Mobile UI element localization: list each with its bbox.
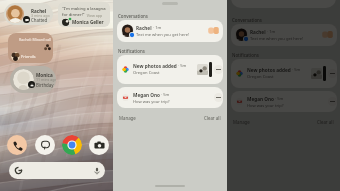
staticText: Monica Geller bbox=[72, 19, 104, 25]
staticText: Text me when you get here! bbox=[250, 36, 304, 42]
staticText: · 5m bbox=[274, 96, 284, 102]
staticText: · 5m bbox=[160, 92, 170, 98]
staticText: New photos added bbox=[247, 67, 291, 73]
button[interactable]: Expand bbox=[214, 65, 223, 74]
button[interactable]: Clear all bbox=[204, 115, 221, 121]
button[interactable]: Chrome bbox=[62, 135, 82, 155]
staticText: Monica bbox=[36, 72, 53, 78]
staticText: "I'm making a lasagna bbox=[62, 6, 106, 12]
staticText: Notifications bbox=[118, 48, 145, 54]
staticText: How was your trip? bbox=[133, 99, 170, 105]
staticText: Chatted bbox=[31, 17, 48, 23]
staticText: Birthday bbox=[36, 82, 54, 88]
button[interactable]: Expand bbox=[328, 97, 337, 106]
staticText: Text me when you get here! bbox=[136, 32, 190, 38]
button[interactable]: Rachel: Missed call bbox=[8, 33, 53, 63]
staticText: · 1m bbox=[266, 29, 276, 35]
button[interactable]: Messages bbox=[35, 135, 55, 155]
button[interactable]: Expand bbox=[214, 93, 223, 102]
staticText: 3 mins ago bbox=[31, 13, 50, 18]
button[interactable]: Rachel bbox=[231, 24, 337, 46]
button[interactable]: "I'm making a lasagna bbox=[58, 2, 110, 27]
staticText: · 5m bbox=[291, 67, 301, 73]
staticText: Oregon Coast bbox=[247, 74, 274, 80]
staticText: · 5m bbox=[177, 63, 187, 69]
staticText: Rachel: Missed call bbox=[19, 37, 52, 42]
staticText: · 1m bbox=[152, 25, 162, 31]
staticText: How was your trip? bbox=[247, 103, 284, 109]
staticText: Notifications bbox=[232, 52, 259, 58]
button[interactable]: Megan Ono bbox=[117, 87, 223, 108]
button[interactable]: Clear all bbox=[317, 119, 334, 125]
staticText: Oregon Coast bbox=[133, 70, 160, 76]
button[interactable]: Monica bbox=[10, 66, 56, 93]
staticText: Conversations bbox=[118, 13, 148, 19]
button[interactable]: New photos added bbox=[231, 59, 337, 88]
button[interactable]: Rachel bbox=[4, 3, 53, 25]
staticText: 11 mins ago bbox=[36, 77, 56, 82]
button[interactable]: Megan Ono bbox=[231, 91, 337, 112]
staticText: Friends bbox=[21, 54, 36, 60]
button[interactable]: Manage bbox=[233, 119, 250, 125]
staticText: Rachel bbox=[31, 8, 47, 14]
staticText: Conversations bbox=[232, 17, 262, 23]
staticText: Rachel bbox=[136, 25, 152, 31]
staticText: Megan Ono bbox=[247, 96, 274, 102]
staticText: Rachel bbox=[250, 29, 266, 35]
staticText: New photos added bbox=[133, 63, 177, 69]
staticText: View app bbox=[85, 13, 103, 18]
button[interactable]: Reply bbox=[322, 30, 333, 39]
button[interactable]: Manage bbox=[119, 115, 136, 121]
button[interactable]: Reply bbox=[208, 26, 219, 35]
staticText: for dinner!" bbox=[62, 12, 85, 18]
button[interactable] bbox=[9, 162, 105, 179]
button[interactable]: New photos added bbox=[117, 55, 223, 84]
button[interactable]: Camera bbox=[89, 135, 109, 155]
staticText: Megan Ono bbox=[133, 92, 160, 98]
button[interactable]: Expand bbox=[328, 69, 337, 78]
button[interactable]: Phone bbox=[7, 135, 27, 155]
button[interactable]: Rachel bbox=[117, 20, 223, 42]
